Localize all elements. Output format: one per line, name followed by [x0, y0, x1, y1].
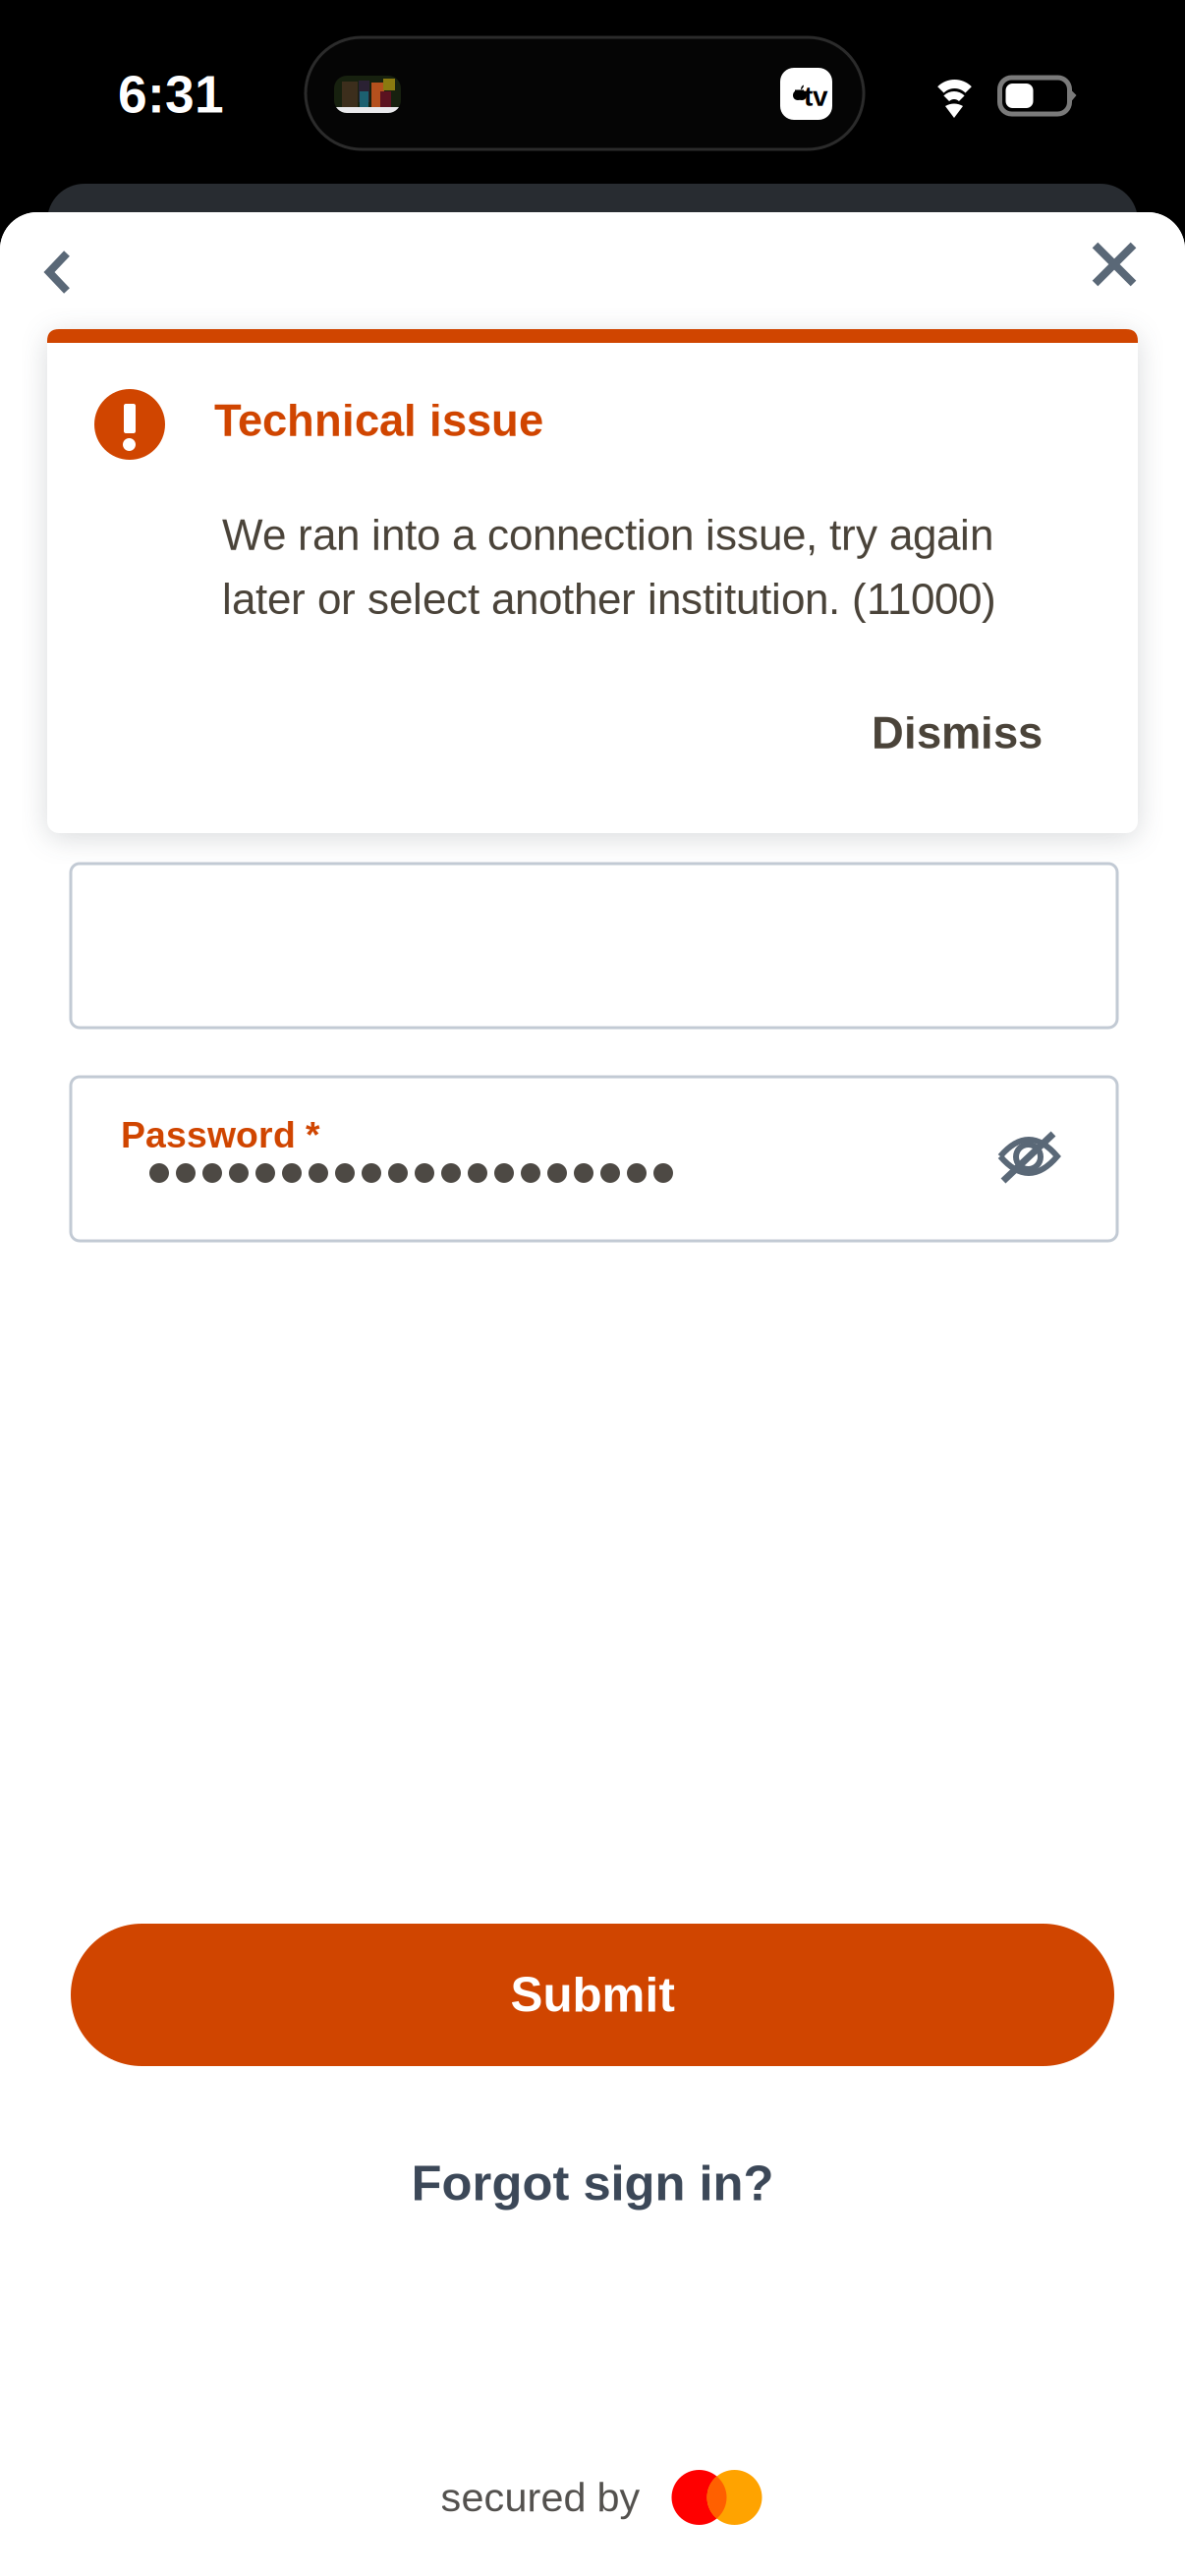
- button[interactable]: Dismiss: [787, 703, 1043, 762]
- staticText: 6:31: [118, 65, 224, 124]
- staticText: tv: [804, 81, 828, 112]
- button[interactable]: Back: [7, 221, 109, 323]
- staticText: We ran into a connection issue, try agai…: [222, 511, 996, 623]
- staticText: Dismiss: [872, 708, 1043, 758]
- button[interactable]: Submit: [71, 1924, 1114, 2066]
- button[interactable]: Forgot sign in?: [395, 2149, 790, 2217]
- staticText: Submit: [510, 1968, 675, 2022]
- button[interactable]: Close: [1063, 213, 1165, 315]
- button[interactable]: Show password: [975, 1103, 1083, 1211]
- staticText: Password *: [121, 1114, 320, 1155]
- staticText: secured by: [441, 2475, 640, 2520]
- staticText: Forgot sign in?: [411, 2155, 774, 2211]
- staticText: Technical issue: [214, 396, 543, 445]
